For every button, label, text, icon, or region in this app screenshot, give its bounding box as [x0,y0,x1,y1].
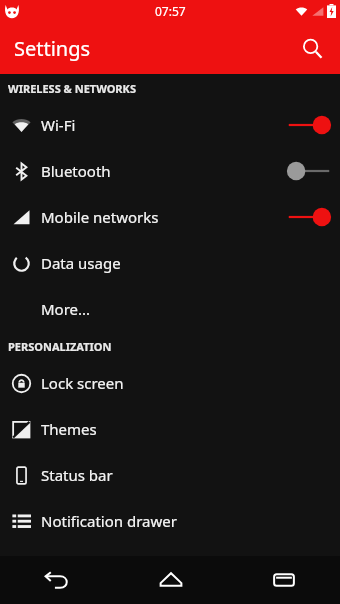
button[interactable]: Status bar [0,452,340,498]
staticText: WIRELESS & NETWORKS [8,81,136,96]
button[interactable]: More... [0,286,340,332]
button[interactable]: Wi-Fi toggle [278,102,340,148]
staticText: Status bar [41,465,330,485]
button[interactable]: Mobile networks [0,194,340,240]
button[interactable]: Data usage [0,240,340,286]
staticText: Data usage [41,253,330,273]
button[interactable]: Mobile networks toggle [278,194,340,240]
staticText: More... [41,299,330,319]
button[interactable]: Bluetooth [0,148,340,194]
staticText: Lock screen [41,373,330,393]
button[interactable]: Home [114,556,227,604]
button[interactable]: Notification drawer [0,498,340,544]
staticText: PERSONALIZATION [8,339,112,354]
button[interactable]: Themes [0,406,340,452]
button[interactable]: Search [292,28,332,68]
staticText: Settings [14,35,91,62]
staticText: Mobile networks [41,207,278,227]
button[interactable]: Bluetooth toggle [278,148,340,194]
staticText: 07:57 [155,3,186,19]
staticText: Themes [41,419,330,439]
staticText: Wi-Fi [41,115,278,135]
button[interactable]: Wi-Fi [0,102,340,148]
staticText: Bluetooth [41,161,278,181]
button[interactable]: Lock screen [0,360,340,406]
button[interactable]: Recents [227,556,340,604]
staticText: Notification drawer [41,511,330,531]
button[interactable]: Back [0,556,114,604]
